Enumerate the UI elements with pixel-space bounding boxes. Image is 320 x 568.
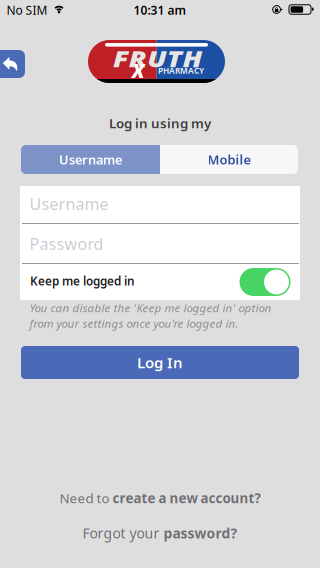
staticText: No SIM (6, 2, 47, 18)
button[interactable]: Need to create a new account? (0, 487, 320, 509)
staticText: You can disable the 'Keep me logged in' … (29, 300, 271, 331)
button[interactable]: Username (21, 145, 160, 174)
staticText: FRUTH (113, 43, 186, 74)
staticText: Username (59, 151, 122, 168)
staticText: Username (29, 193, 108, 215)
staticText: Mobile (207, 151, 250, 168)
staticText: X (132, 58, 144, 83)
staticText: Need to create a new account? (59, 489, 260, 507)
button[interactable]: Forgot your password? (0, 522, 320, 544)
staticText: Log in using my (109, 114, 211, 132)
staticText: Keep me logged in (30, 273, 134, 289)
button[interactable]: Keep me logged in (239, 268, 290, 296)
staticText: 10:31 am (133, 2, 186, 18)
staticText: Forgot your password? (82, 524, 237, 542)
button[interactable]: Mobile (160, 145, 298, 174)
staticText: Log In (137, 352, 183, 373)
button[interactable]: Log In (21, 346, 299, 379)
staticText: Password (29, 233, 103, 255)
staticText: PHARMACY (158, 65, 204, 76)
button[interactable]: Back (0, 50, 25, 78)
